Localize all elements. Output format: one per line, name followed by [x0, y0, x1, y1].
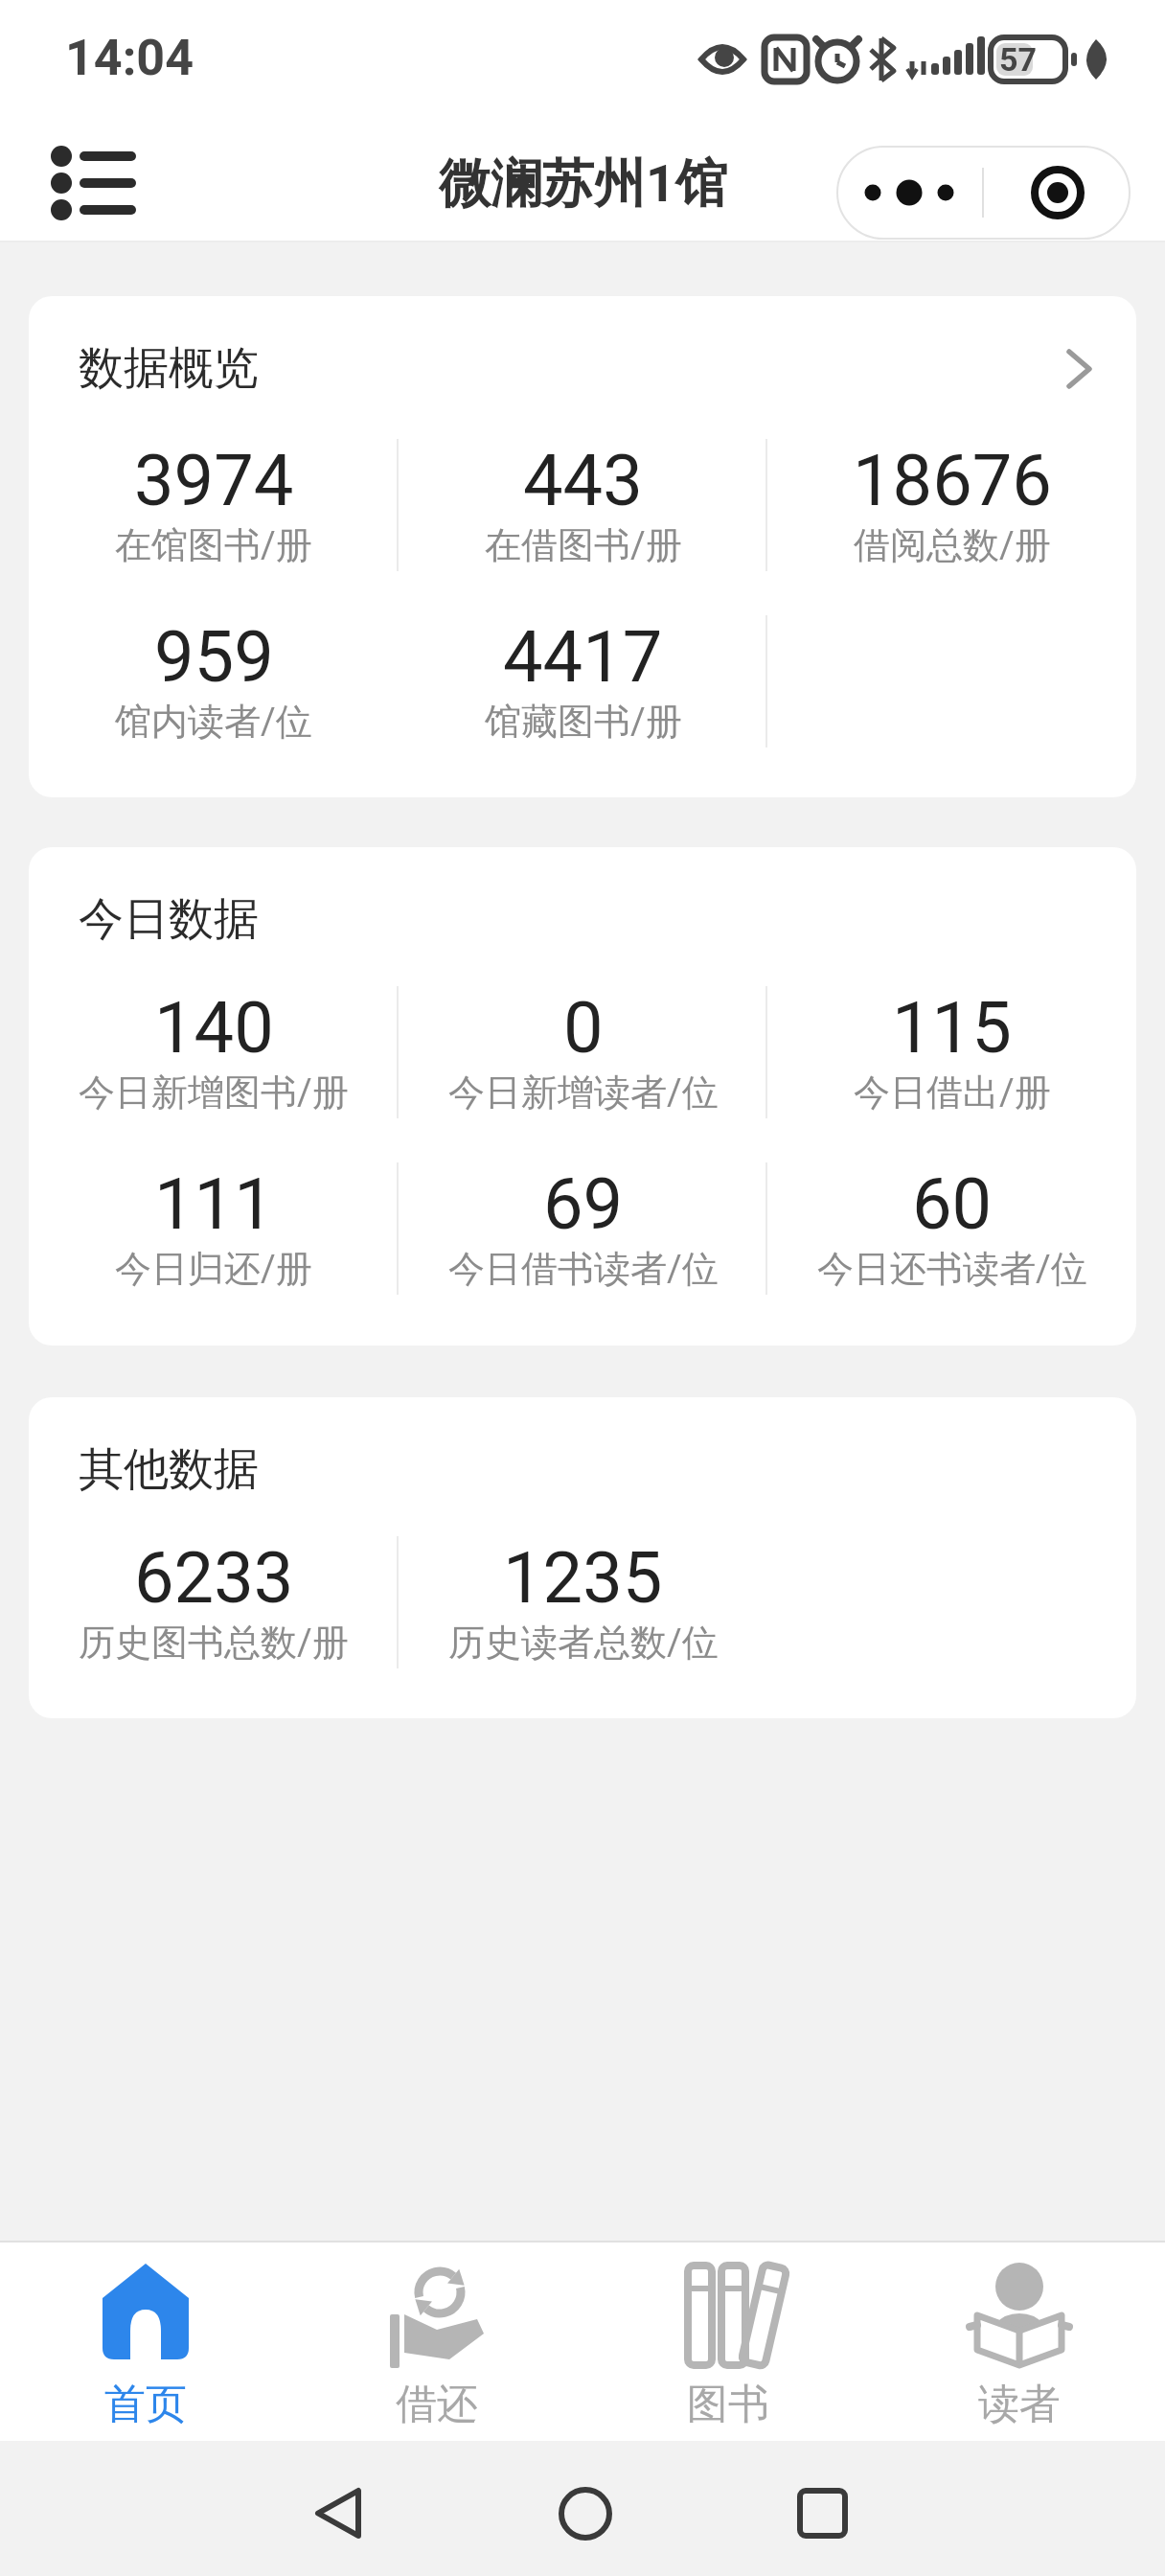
button[interactable]: 图书	[582, 2242, 874, 2441]
staticText: 14:04	[65, 29, 194, 87]
button[interactable]: 今日数据	[29, 847, 1136, 1345]
staticText: 借阅总数/册	[854, 522, 1051, 568]
staticText: 今日归还/册	[115, 1246, 312, 1292]
staticText: 今日借书读者/位	[448, 1246, 719, 1292]
button[interactable]	[836, 146, 982, 240]
button[interactable]: 读者	[874, 2242, 1165, 2441]
staticText: 其他数据	[79, 1441, 259, 1498]
staticText: 在馆图书/册	[115, 522, 312, 568]
staticText: 微澜苏州1馆	[439, 151, 727, 217]
button[interactable]	[984, 146, 1131, 240]
button[interactable]	[38, 134, 144, 240]
staticText: 6233	[134, 1536, 294, 1620]
staticText: 数据概览	[79, 340, 259, 397]
button[interactable]: 其他数据	[29, 1397, 1136, 1718]
staticText: 历史图书总数/册	[79, 1620, 349, 1666]
button[interactable]	[0, 2441, 389, 2576]
staticText: 111	[154, 1162, 274, 1246]
staticText: 今日新增图书/册	[79, 1069, 349, 1115]
staticText: 今日新增读者/位	[448, 1069, 719, 1115]
staticText: 140	[154, 986, 274, 1069]
staticText: 馆藏图书/册	[485, 699, 682, 745]
button[interactable]	[389, 2441, 777, 2576]
staticText: 今日数据	[79, 891, 259, 948]
button[interactable]: 借还	[291, 2242, 582, 2441]
staticText: 0	[563, 986, 604, 1069]
staticText: 69	[543, 1162, 624, 1246]
staticText: 历史读者总数/位	[448, 1620, 719, 1666]
staticText: 959	[154, 615, 274, 699]
staticText: 60	[912, 1162, 993, 1246]
button[interactable]: 数据概览	[29, 296, 1136, 797]
staticText: 443	[523, 439, 643, 522]
staticText: 3974	[134, 439, 294, 522]
staticText: 18676	[853, 439, 1052, 522]
staticText: 在借图书/册	[485, 522, 682, 568]
button[interactable]: 首页	[0, 2242, 291, 2441]
staticText: 读者	[978, 2379, 1061, 2430]
staticText: 借还	[396, 2379, 478, 2430]
staticText: 115	[892, 986, 1012, 1069]
staticText: 4417	[503, 615, 663, 699]
staticText: 57	[999, 40, 1038, 79]
staticText: 1235	[503, 1536, 663, 1620]
staticText: 首页	[104, 2379, 187, 2430]
staticText: 今日借出/册	[854, 1069, 1051, 1115]
button[interactable]	[777, 2441, 1165, 2576]
staticText: 馆内读者/位	[115, 699, 312, 745]
staticText: 图书	[687, 2379, 769, 2430]
staticText: 今日还书读者/位	[817, 1246, 1087, 1292]
